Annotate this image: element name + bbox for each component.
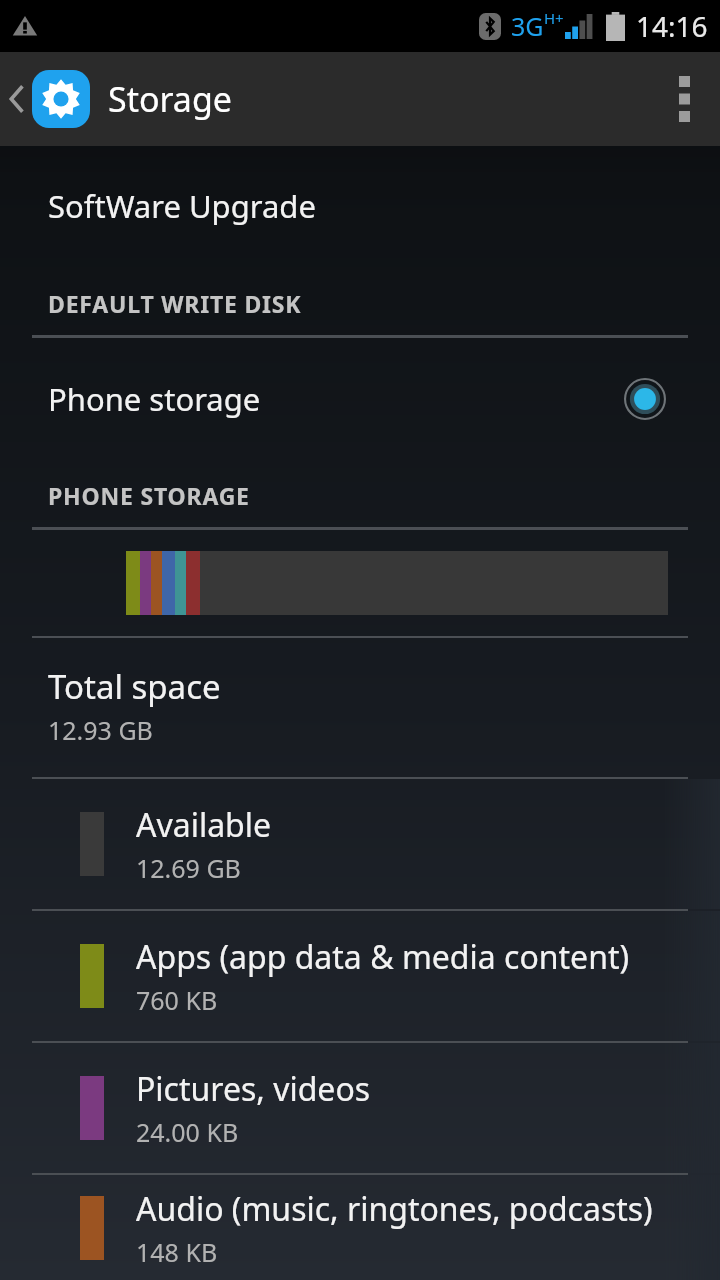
staticText: Total space	[48, 664, 221, 709]
button[interactable]: Available	[0, 779, 720, 909]
button[interactable]: SoftWare Upgrade	[0, 146, 720, 266]
button[interactable]: Apps (app data & media content)	[0, 911, 720, 1041]
staticText: 12.69 GB	[136, 851, 241, 885]
staticText: H+	[544, 8, 564, 28]
button[interactable]: Navigate up	[0, 52, 92, 146]
button[interactable]: More options	[648, 52, 720, 146]
staticText: Apps (app data & media content)	[136, 935, 630, 979]
staticText: 760 KB	[136, 983, 218, 1017]
staticText: 3G	[511, 9, 544, 43]
staticText: 148 KB	[136, 1235, 218, 1269]
button[interactable]: Phone storage	[0, 338, 720, 460]
staticText: 24.00 KB	[136, 1115, 239, 1149]
staticText: PHONE STORAGE	[48, 480, 250, 511]
button[interactable]: Total space	[0, 638, 720, 777]
staticText: DEFAULT WRITE DISK	[48, 288, 302, 319]
staticText: Available	[136, 803, 272, 847]
staticText: 14:16	[636, 7, 708, 45]
button[interactable]: Pictures, videos	[0, 1043, 720, 1173]
staticText: Storage	[108, 76, 233, 122]
staticText: Pictures, videos	[136, 1067, 371, 1111]
staticText: Phone storage	[48, 378, 261, 420]
staticText: Audio (music, ringtones, podcasts)	[136, 1187, 653, 1231]
button[interactable]: Audio (music, ringtones, podcasts)	[0, 1175, 720, 1280]
staticText: SoftWare Upgrade	[48, 185, 316, 227]
staticText: 12.93 GB	[48, 713, 153, 747]
